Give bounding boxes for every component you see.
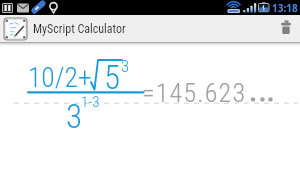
staticText: 10/2+ — [28, 61, 92, 93]
button[interactable] — [4, 18, 27, 40]
button[interactable] — [274, 15, 300, 42]
staticText: 13:18 — [272, 1, 298, 15]
staticText: 3 — [66, 97, 83, 136]
staticText: MyScript Calculator — [33, 22, 126, 36]
staticText: =145.623 — [142, 78, 247, 108]
staticText: 1-3 — [81, 93, 100, 111]
staticText: 5 — [104, 58, 121, 97]
button[interactable] — [0, 43, 300, 180]
staticText: 3 — [121, 57, 130, 76]
